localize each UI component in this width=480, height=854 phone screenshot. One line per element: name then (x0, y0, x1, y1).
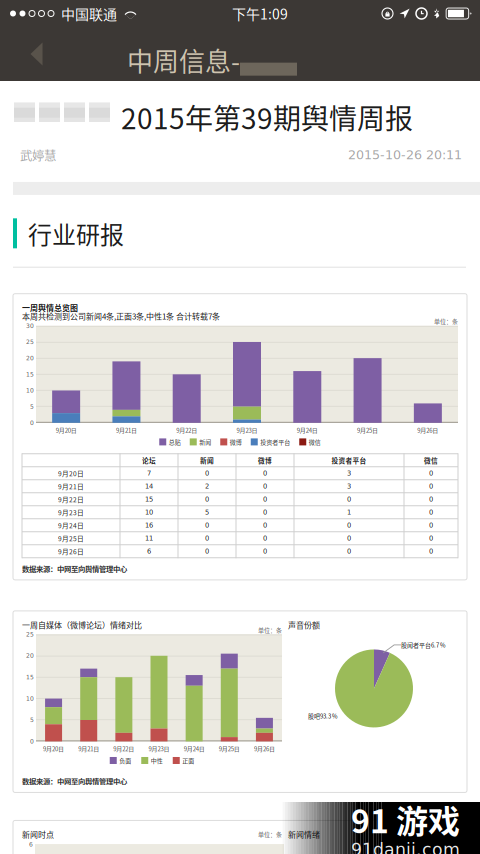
staticText: 0 (429, 469, 433, 477)
staticText: 0 (347, 521, 351, 529)
staticText: 91 游戏 (351, 796, 460, 842)
staticText: 中国联通 (61, 3, 117, 24)
staticText: 3 (347, 482, 351, 490)
staticText: 9月23日 (236, 426, 257, 434)
staticText: 0 (263, 469, 267, 477)
staticText: 9月25日 (357, 426, 378, 434)
staticText: 0 (429, 482, 433, 490)
staticText: 5 (205, 508, 209, 516)
staticText: 本周共检测到公司新闻4条,正面3条,中性1条 合计转载7条 (22, 310, 220, 322)
staticText: 20 (26, 355, 34, 362)
staticText: 0 (205, 547, 209, 555)
staticText: 总贴 (169, 438, 181, 446)
staticText: 9月23日 (148, 744, 169, 753)
staticText: 0 (263, 495, 267, 503)
staticText: 负面 (119, 756, 131, 765)
staticText: 9月24日 (58, 520, 84, 530)
staticText: 行业研报 (28, 216, 124, 251)
staticText: 0 (205, 534, 209, 542)
staticText: 股闻者平台6.7 % (401, 640, 446, 649)
staticText: 0 (263, 521, 267, 529)
staticText: 15 (145, 495, 153, 503)
staticText: 10 (26, 695, 34, 702)
staticText: 0 (429, 534, 433, 542)
staticText: 5 (30, 716, 34, 723)
staticText: 微博 (230, 438, 242, 446)
staticText: 5 (30, 403, 34, 410)
staticText: 9月24日 (297, 426, 318, 434)
staticText: 新闻情绪 (288, 828, 320, 840)
staticText: 30 (26, 322, 34, 329)
staticText: 9月26日 (254, 744, 275, 753)
staticText: 0 (347, 547, 351, 555)
staticText: 9月26日 (417, 426, 438, 434)
staticText: 10 (26, 387, 34, 394)
staticText: 9月24日 (184, 744, 205, 753)
staticText: 6 (147, 547, 151, 555)
staticText: 9月26日 (58, 546, 84, 556)
staticText: 0 (429, 508, 433, 516)
staticText: 中性 (151, 756, 163, 765)
staticText: 9月23日 (58, 507, 84, 517)
staticText: 0 (263, 547, 267, 555)
staticText: 股吧93.3 % (308, 711, 338, 720)
staticText: 正面 (182, 756, 194, 765)
staticText: 14 (145, 482, 153, 490)
staticText: 单位：条 (434, 317, 458, 326)
staticText: 单位：条 (258, 830, 282, 839)
staticText: 7 (147, 469, 151, 477)
staticText: 9月20日 (58, 468, 84, 478)
staticText: 微信 (424, 455, 438, 465)
staticText: 论坛 (142, 455, 156, 465)
staticText: 9月21日 (58, 481, 84, 491)
staticText: 0 (263, 508, 267, 516)
staticText: 9月21日 (78, 744, 99, 753)
staticText: 下午1:09 (232, 3, 288, 24)
staticText: 武婷慧 (20, 146, 56, 164)
staticText: 一周自媒体（微博论坛）情绪对比 (22, 619, 142, 630)
staticText: 0 (429, 495, 433, 503)
staticText: 0 (263, 534, 267, 542)
staticText: 0 (205, 469, 209, 477)
staticText: 9月22日 (113, 744, 134, 753)
staticText: 0 (347, 534, 351, 542)
staticText: 0 (263, 482, 267, 490)
staticText: 0 (30, 738, 34, 745)
staticText: 9月25日 (58, 533, 84, 543)
staticText: 25 (26, 338, 34, 345)
staticText: 0 (347, 495, 351, 503)
staticText: 微信 (309, 438, 321, 446)
staticText: 9月21日 (116, 426, 137, 434)
staticText: 数据来源：中网至向舆情管理中心 (22, 776, 127, 786)
staticText: 1 (347, 508, 351, 516)
staticText: 声音份额 (288, 619, 320, 630)
staticText: 20 (26, 652, 34, 659)
button[interactable]: Back (0, 27, 58, 81)
staticText: 10 (145, 508, 153, 516)
staticText: 2 (205, 482, 209, 490)
staticText: 0 (30, 419, 34, 426)
staticText: 2015年第39期舆情周报 (121, 97, 413, 137)
staticText: 单位：条 (258, 625, 282, 634)
staticText: 16 (145, 521, 153, 529)
staticText: 数据来源：中网至向舆情管理中心 (22, 563, 127, 574)
staticText: 9月22日 (58, 494, 84, 504)
staticText: 0 (429, 521, 433, 529)
staticText: 一周舆情总览图 (22, 302, 78, 313)
staticText: 9月20日 (56, 426, 77, 434)
staticText: 3 (347, 469, 351, 477)
staticText: 新闻 (199, 438, 211, 446)
staticText: 25 (26, 631, 34, 638)
staticText: 6 (29, 841, 33, 848)
staticText: 9月25日 (219, 744, 240, 753)
staticText: 15 (26, 674, 34, 681)
staticText: 0 (205, 521, 209, 529)
staticText: 新闻 (200, 455, 214, 465)
staticText: 微博 (258, 455, 272, 465)
staticText: 15 (26, 371, 34, 378)
staticText: 0 (429, 547, 433, 555)
staticText: 9月22日 (176, 426, 197, 434)
staticText: 投资者平台 (260, 438, 290, 446)
staticText: 中周信息- (127, 41, 240, 79)
staticText: 投资者平台 (331, 455, 366, 465)
